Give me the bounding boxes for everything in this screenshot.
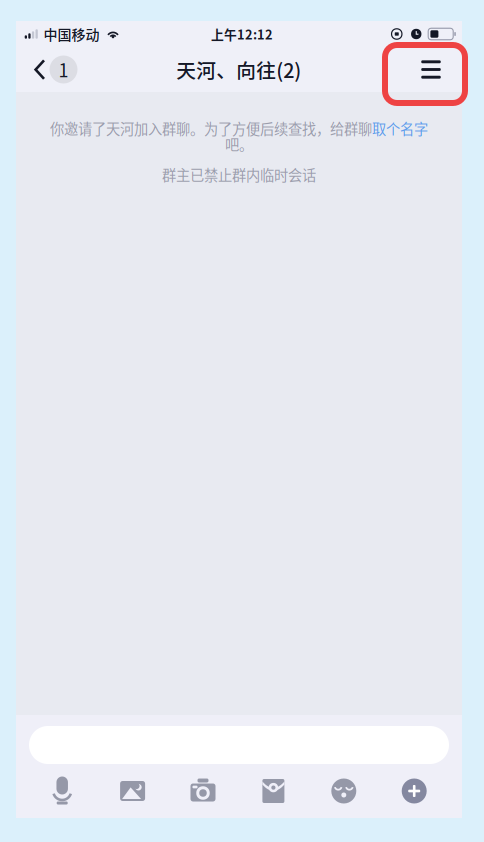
staticText: 吧。	[225, 134, 253, 154]
button[interactable]: More	[379, 773, 449, 809]
staticText: 1	[58, 56, 68, 83]
button[interactable]: Voice	[27, 773, 97, 809]
button[interactable]: Camera	[168, 773, 238, 809]
staticText: 上午12:12	[211, 25, 273, 43]
button[interactable]: Photos	[97, 773, 168, 809]
staticText: 天河、向往(2)	[176, 55, 301, 84]
button[interactable]: Emoji	[309, 773, 379, 809]
staticText: 取个名字	[372, 118, 428, 139]
button[interactable]: 1	[16, 47, 85, 92]
staticText: 你邀请了天河加入群聊。为了方便后续查找，给群聊	[50, 118, 372, 139]
button[interactable]: Menu	[392, 47, 470, 92]
staticText: 群主已禁止群内临时会话	[162, 164, 316, 185]
button[interactable]: Red packet	[238, 773, 309, 809]
staticText: 中国移动	[43, 24, 99, 44]
